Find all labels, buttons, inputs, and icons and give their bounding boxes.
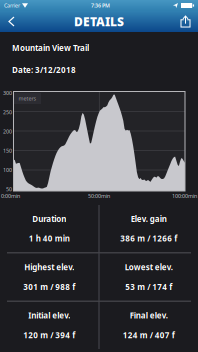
staticText: DETAILS (74, 13, 124, 29)
staticText: 100 (3, 166, 12, 174)
staticText: Highest elev. (24, 262, 74, 272)
staticText: Carrier (4, 2, 20, 9)
staticText: Duration (32, 214, 66, 224)
staticText: 124 m / 407 f (123, 330, 175, 340)
staticText: Mountain View Trail (12, 43, 89, 53)
staticText: 0:00min (1, 192, 20, 200)
staticText: 300 (3, 89, 12, 97)
staticText: 301 m / 988 f (23, 281, 75, 292)
staticText: 150 (3, 147, 12, 154)
staticText: Final elev. (130, 310, 168, 321)
staticText: 100:00min (172, 192, 197, 200)
staticText: 53 m / 174 f (125, 281, 172, 292)
staticText: Lowest elev. (125, 262, 173, 272)
staticText: 120 m / 394 f (23, 330, 75, 340)
staticText: Date: 3/12/2018 (12, 65, 76, 75)
button[interactable]: Back (3, 12, 20, 31)
staticText: 200 (3, 128, 12, 135)
staticText: 50:00min (88, 192, 110, 200)
staticText: 1 h 40 min (29, 233, 70, 244)
button[interactable]: Share (176, 12, 195, 31)
staticText: Initial elev. (28, 310, 70, 321)
staticText: 250 (3, 109, 12, 116)
staticText: 50 (6, 186, 12, 193)
staticText: 386 m / 1266 f (120, 233, 177, 244)
staticText: Elev. gain (131, 214, 167, 224)
staticText: 7:36 PM (91, 2, 110, 9)
staticText: meters (18, 95, 36, 102)
